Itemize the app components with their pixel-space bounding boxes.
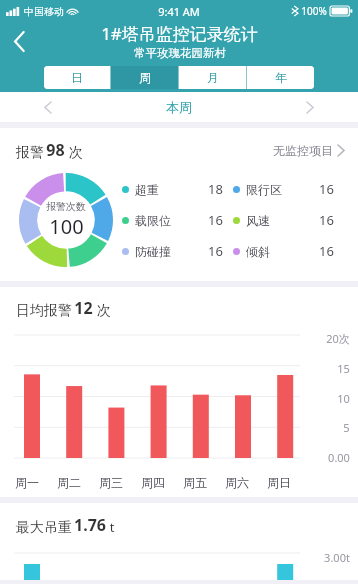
button[interactable]: 月 (179, 66, 246, 89)
staticText: 12 (74, 297, 93, 319)
staticText: 日 (71, 70, 83, 85)
staticText: 防碰撞 (135, 244, 171, 259)
button[interactable]: 日 (44, 66, 110, 89)
staticText: 20次 (326, 331, 350, 346)
staticText: 15 (337, 361, 350, 376)
staticText: 0.00 (328, 450, 350, 465)
staticText: 3.00t (324, 550, 350, 565)
staticText: 16 (319, 211, 334, 229)
staticText: 最大吊重 (14, 517, 74, 536)
button[interactable]: Next (298, 95, 322, 119)
staticText: 报警次数 (46, 200, 86, 213)
staticText: 98 (46, 139, 65, 161)
staticText: 16 (319, 180, 334, 198)
staticText: 周四 (141, 475, 165, 490)
button[interactable]: Back (0, 22, 38, 60)
staticText: 常平玫瑰花园新村 (134, 46, 226, 60)
staticText: 日均报警 (14, 300, 74, 319)
staticText: 限行区 (246, 182, 282, 197)
staticText: 周三 (99, 475, 123, 490)
staticText: 5 (343, 420, 350, 435)
button[interactable]: 无监控项目 (273, 143, 344, 158)
staticText: 16 (208, 211, 223, 229)
staticText: 16 (319, 242, 334, 260)
staticText: 超重 (135, 182, 159, 197)
staticText: 本周 (166, 99, 192, 115)
staticText: 风速 (246, 213, 270, 228)
staticText: 年 (275, 70, 287, 85)
staticText: 18 (208, 180, 223, 198)
staticText: 100% (301, 4, 327, 18)
staticText: 载限位 (135, 213, 171, 228)
staticText: 周六 (225, 475, 249, 490)
staticText: 周一 (15, 475, 39, 490)
button[interactable]: Previous (36, 95, 60, 119)
staticText: 次 (65, 142, 83, 161)
staticText: 无监控项目 (273, 143, 333, 158)
staticText: 1.76 (74, 514, 106, 536)
button[interactable]: 年 (247, 66, 314, 89)
staticText: 周 (139, 70, 151, 85)
staticText: 10 (337, 391, 350, 406)
staticText: 倾斜 (246, 244, 270, 259)
staticText: 周二 (57, 475, 81, 490)
staticText: 1#塔吊监控记录统计 (101, 22, 258, 45)
staticText: 16 (208, 242, 223, 260)
staticText: 次 (93, 300, 111, 319)
staticText: t (106, 518, 115, 536)
staticText: 月 (207, 70, 219, 85)
staticText: 周五 (183, 475, 207, 490)
button[interactable]: 周 (111, 66, 178, 89)
staticText: 报警 (14, 142, 46, 161)
staticText: 中国移动 (24, 5, 64, 18)
staticText: 周日 (267, 475, 291, 490)
staticText: 9:41 AM (158, 4, 200, 19)
staticText: 100 (49, 213, 84, 240)
